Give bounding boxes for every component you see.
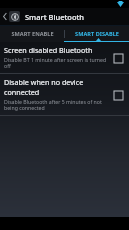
staticText: Smart Bluetooth — [25, 12, 85, 22]
staticText: Disable Bluetooth after 5 minutes of not… — [4, 98, 107, 112]
staticText: SMART DISABLE — [75, 30, 119, 38]
staticText: SMART ENABLE — [11, 30, 54, 38]
button[interactable]: Toggle Disable when no device connected — [111, 88, 125, 102]
button[interactable]: Disable when no device connected — [0, 74, 129, 115]
staticText: Disable BT 1 minute after screen is turn… — [4, 56, 107, 70]
button[interactable]: Navigate up — [0, 8, 9, 25]
button[interactable]: SMART ENABLE — [0, 26, 64, 42]
staticText: Screen disabled Bluetooth — [4, 45, 93, 55]
button[interactable]: Toggle Screen disabled Bluetooth — [111, 51, 125, 65]
button[interactable]: Screen disabled Bluetooth — [0, 42, 129, 73]
button[interactable]: SMART DISABLE — [64, 26, 129, 42]
staticText: Disable when no device connected — [4, 77, 107, 97]
